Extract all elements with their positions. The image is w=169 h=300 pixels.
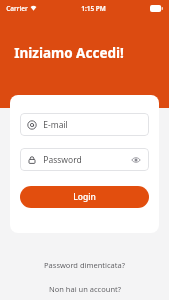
staticText: Non hai un account?	[49, 284, 121, 294]
staticText: Iniziamo Accedi!	[14, 44, 124, 62]
staticText: Password	[43, 154, 82, 166]
button[interactable]: Login	[20, 186, 149, 208]
staticText: 1:15 PM	[81, 4, 106, 13]
staticText: Password dimenticata?	[44, 260, 125, 270]
button[interactable]: Non hai un account?	[41, 282, 129, 296]
staticText: Carrier	[6, 4, 28, 13]
button[interactable]: E-mail	[20, 113, 149, 136]
button[interactable]: Password dimenticata?	[36, 258, 133, 272]
button[interactable]: Password	[20, 148, 149, 171]
staticText: Login	[73, 191, 96, 203]
button[interactable]: Show password	[130, 154, 142, 166]
staticText: E-mail	[43, 119, 68, 131]
